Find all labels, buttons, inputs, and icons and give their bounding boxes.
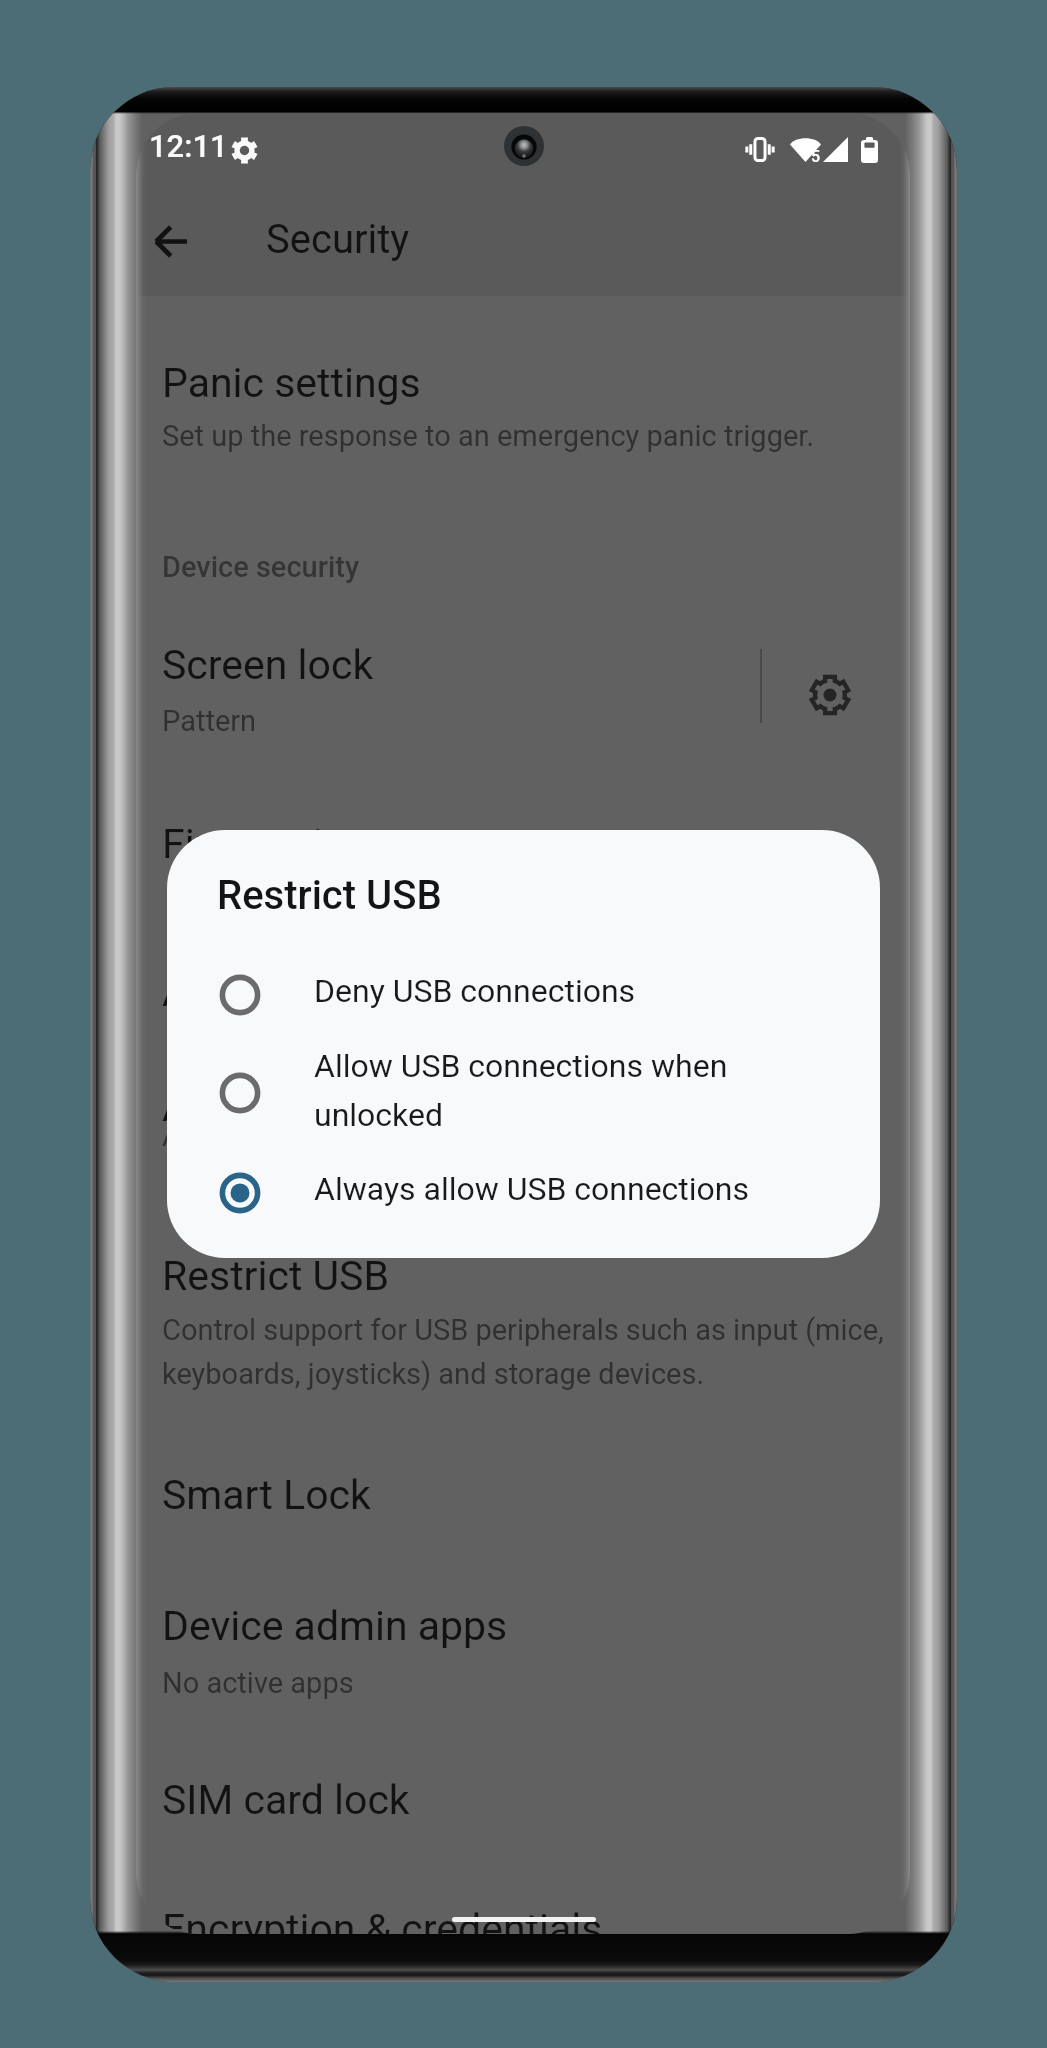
button[interactable]: Auto factory reset: [136, 1081, 910, 1145]
staticText: Auto factory reset: [162, 1087, 488, 1130]
button[interactable]: Panic settings: [136, 357, 910, 421]
button[interactable]: Restrict USB: [136, 1250, 910, 1314]
staticText: After 30 failed unlock attempts: [162, 1119, 561, 1153]
staticText: Screen lock: [162, 645, 374, 688]
button[interactable]: Encryption & credentials: [136, 1903, 910, 1934]
staticText: Encryption & credentials: [162, 1909, 603, 1934]
staticText: unlocked: [314, 1087, 444, 1136]
staticText: Restrict USB: [162, 1256, 389, 1299]
staticText: Pattern: [162, 704, 257, 738]
staticText: Allow USB connections when: [314, 1038, 728, 1087]
button[interactable]: Device admin apps: [136, 1600, 910, 1664]
staticText: Device admin apps: [162, 1606, 508, 1649]
button[interactable]: Smart Lock: [136, 1469, 910, 1533]
staticText: Device security: [162, 553, 360, 583]
button[interactable]: Screen lock settings: [782, 647, 878, 743]
staticText: Restrict USB: [217, 876, 442, 918]
staticText: Deny USB connections: [314, 963, 636, 1012]
staticText: keyboards, joysticks) and storage device…: [162, 1357, 705, 1391]
button[interactable]: [181, 1151, 866, 1235]
staticText: Panic settings: [162, 363, 421, 406]
staticText: 12:11: [149, 132, 228, 164]
staticText: Fingerprint: [162, 824, 359, 867]
button[interactable]: Auto reboot: [136, 966, 910, 1030]
staticText: Auto reboot: [162, 972, 377, 1015]
button[interactable]: Screen lock: [136, 639, 910, 703]
staticText: No active apps: [162, 1666, 354, 1700]
staticText: Always allow USB connections: [314, 1161, 750, 1210]
button[interactable]: [181, 953, 866, 1037]
button[interactable]: Fingerprint: [136, 818, 910, 882]
button[interactable]: SIM card lock: [136, 1774, 910, 1838]
staticText: Set up the response to an emergency pani…: [162, 419, 815, 453]
button[interactable]: [181, 1051, 866, 1135]
button[interactable]: Navigate up: [136, 197, 205, 285]
staticText: Control support for USB peripherals such…: [162, 1313, 884, 1347]
staticText: 5: [811, 147, 821, 166]
staticText: Smart Lock: [162, 1475, 371, 1518]
staticText: Security: [266, 220, 410, 262]
staticText: SIM card lock: [162, 1780, 410, 1823]
